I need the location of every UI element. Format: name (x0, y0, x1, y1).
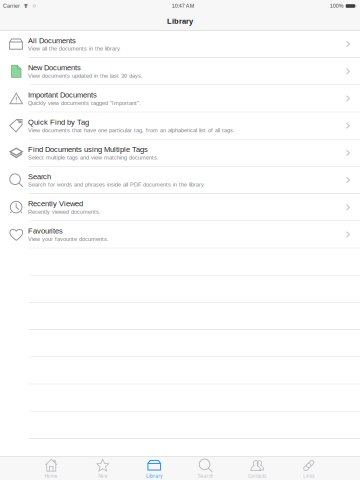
staticText: Quick Find by Tag (28, 118, 89, 126)
button[interactable]: New (77, 456, 128, 480)
staticText: Favourites (28, 227, 63, 235)
button[interactable]: Links (283, 456, 334, 480)
button[interactable]: Favourites (0, 221, 360, 248)
staticText: View documents that have one particular … (28, 127, 235, 133)
staticText: 10:47 AM (172, 3, 194, 9)
staticText: Important Documents (28, 91, 97, 99)
staticText: Recently Viewed (28, 200, 83, 208)
staticText: Select multiple tags and view matching d… (28, 154, 159, 161)
staticText: Search (198, 474, 214, 479)
button[interactable]: New Documents (0, 58, 360, 85)
staticText: Search for words and phrases inside all … (28, 181, 205, 188)
button[interactable]: Important Documents (0, 85, 360, 112)
staticText: Contacts (248, 474, 266, 479)
staticText: Links (303, 474, 314, 479)
staticText: New Documents (28, 64, 81, 72)
button[interactable]: Quick Find by Tag (0, 112, 360, 140)
button[interactable]: All Documents (0, 31, 360, 58)
staticText: Recently viewed documents. (28, 209, 101, 215)
staticText: View your favourite documents. (28, 236, 109, 242)
staticText: View all the documents in the library. (28, 45, 121, 52)
button[interactable]: Home (25, 456, 77, 480)
staticText: All Documents (28, 36, 76, 45)
staticText: Quickly view documents tagged "Important… (28, 100, 141, 106)
staticText: New (98, 474, 107, 479)
staticText: Carrier (3, 3, 20, 9)
button[interactable]: Contacts (231, 456, 283, 480)
staticText: Library (146, 474, 162, 479)
staticText: Home (45, 474, 58, 479)
button[interactable]: Recently Viewed (0, 194, 360, 221)
staticText: Search (28, 172, 51, 181)
button[interactable]: Search (0, 167, 360, 194)
staticText: Library (167, 17, 193, 25)
staticText: 100% (330, 3, 344, 9)
button[interactable]: Search (180, 456, 231, 480)
button[interactable]: Library (128, 456, 180, 480)
button[interactable]: Find Documents using Multiple Tags (0, 140, 360, 167)
staticText: View documents updated in the last 30 da… (28, 73, 143, 79)
staticText: Find Documents using Multiple Tags (28, 145, 148, 153)
